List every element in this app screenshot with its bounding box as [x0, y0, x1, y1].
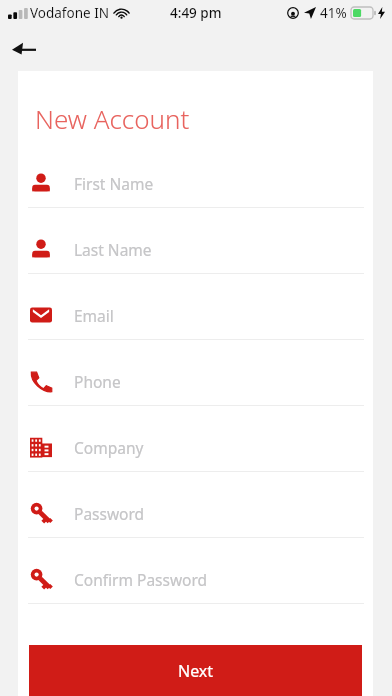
button[interactable]: Next — [29, 645, 362, 696]
button[interactable]: Company — [18, 423, 373, 489]
button[interactable]: Last Name — [18, 225, 373, 291]
staticText: Phone — [74, 371, 121, 392]
staticText: 41% — [320, 4, 347, 22]
button[interactable]: Confirm Password — [18, 555, 373, 621]
button[interactable]: First Name — [18, 159, 373, 225]
staticText: Email — [74, 305, 114, 326]
staticText: Last Name — [74, 239, 152, 260]
staticText: Confirm Password — [74, 569, 208, 590]
staticText: Vodafone IN — [30, 4, 109, 22]
button[interactable]: Back — [6, 31, 42, 67]
staticText: 4:49 pm — [170, 4, 222, 22]
button[interactable]: Password — [18, 489, 373, 555]
button[interactable]: Phone — [18, 357, 373, 423]
staticText: First Name — [74, 173, 154, 194]
staticText: Company — [74, 437, 144, 458]
staticText: Next — [178, 660, 214, 682]
staticText: Password — [74, 503, 145, 524]
button[interactable]: Email — [18, 291, 373, 357]
staticText: New Account — [35, 101, 190, 136]
